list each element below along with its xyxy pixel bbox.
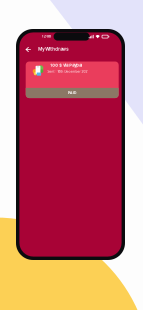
staticText: PAID (68, 91, 77, 95)
button[interactable]: PAID (26, 61, 119, 98)
staticText: Sent : 18th December 2021 (47, 70, 88, 73)
staticText: My Withdraws (38, 46, 68, 52)
staticText: 12:08 (42, 34, 51, 38)
staticText: 100 $ via Paypal (50, 63, 82, 68)
button[interactable]: Back (25, 45, 34, 54)
